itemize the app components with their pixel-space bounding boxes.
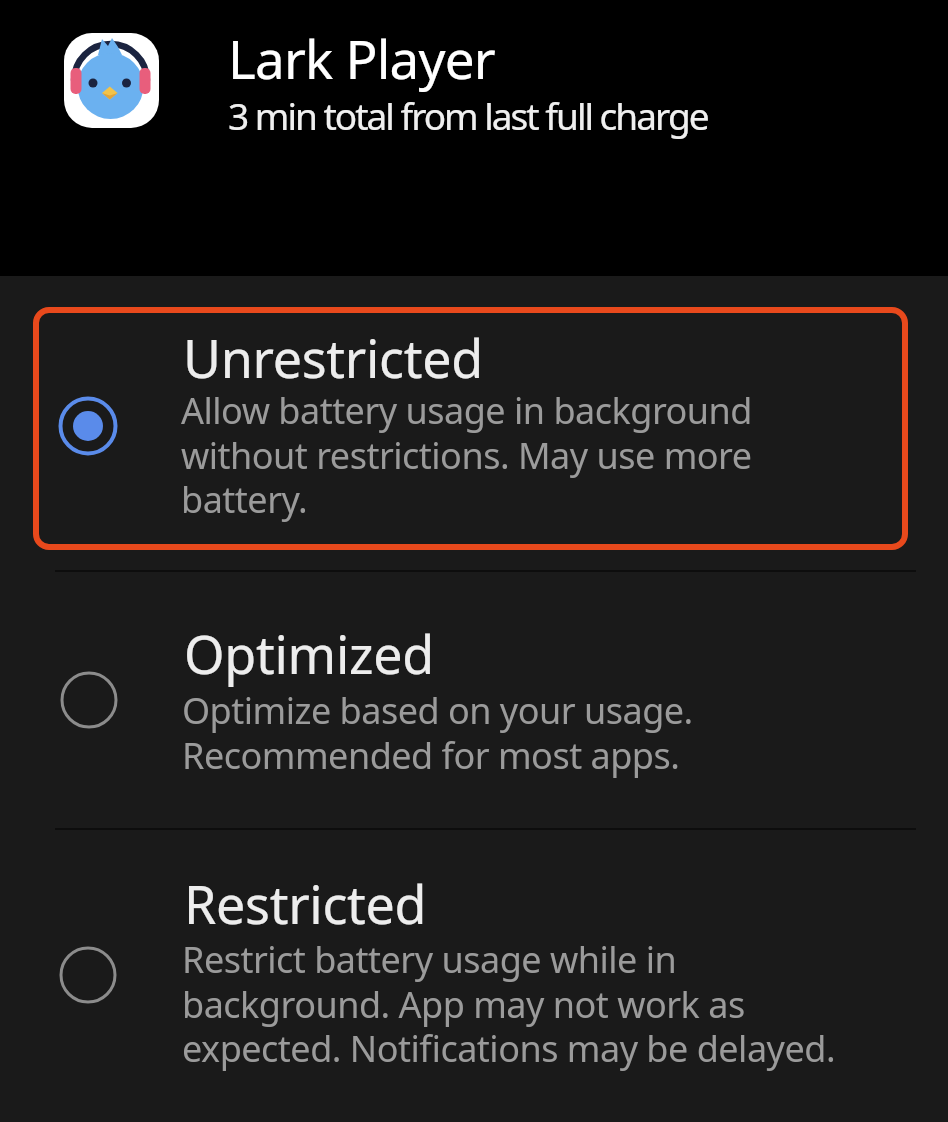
button[interactable] xyxy=(33,307,908,550)
staticText: 3 min total from last full charge xyxy=(228,90,708,140)
staticText: Restricted xyxy=(184,868,427,939)
staticText: Restrict battery usage while in backgrou… xyxy=(182,935,836,1072)
staticText: Allow battery usage in background withou… xyxy=(181,386,752,523)
button[interactable] xyxy=(33,585,908,815)
staticText: Unrestricted xyxy=(183,322,483,393)
button[interactable] xyxy=(33,845,908,1095)
staticText: Optimized xyxy=(184,618,434,689)
staticText: Lark Player xyxy=(228,22,495,94)
staticText: Optimize based on your usage. Recommende… xyxy=(182,686,693,779)
